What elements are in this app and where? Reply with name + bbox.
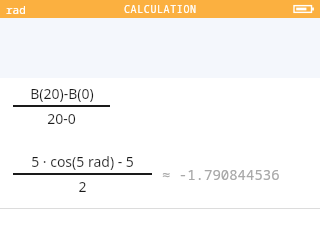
button[interactable]: Battery bbox=[294, 3, 314, 15]
button[interactable]: 5 · cos(5 rad) - 5 bbox=[0, 146, 320, 196]
staticText: 20-0 bbox=[47, 109, 76, 128]
button[interactable]: B(20)-B(0) bbox=[0, 78, 320, 128]
staticText: CALCULATION bbox=[124, 2, 197, 16]
staticText: B(20)-B(0) bbox=[30, 84, 94, 103]
staticText: ≈ -1.790844536 bbox=[162, 165, 280, 184]
staticText: 5 · cos(5 rad) - 5 bbox=[31, 152, 134, 171]
button[interactable]: rad bbox=[6, 2, 26, 17]
staticText: 2 bbox=[78, 177, 87, 196]
